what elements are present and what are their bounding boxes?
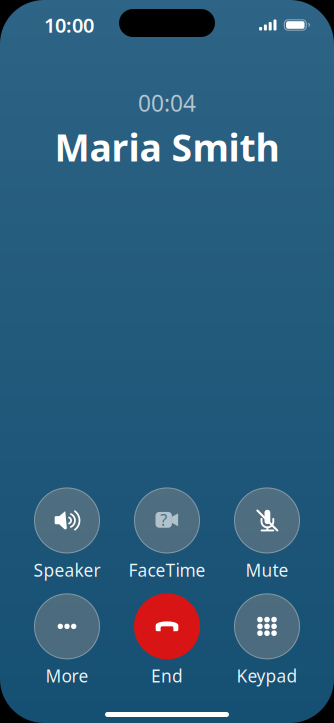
button[interactable]: More [17, 593, 117, 687]
button[interactable]: Speaker [17, 487, 117, 581]
staticText: Maria Smith [54, 122, 279, 172]
staticText: Keypad [236, 664, 297, 687]
button[interactable]: Mute [217, 487, 317, 581]
staticText: Speaker [33, 558, 100, 581]
button[interactable]: End [117, 593, 217, 687]
staticText: 10:00 [44, 12, 94, 38]
button[interactable]: ? [117, 487, 217, 581]
staticText: Mute [245, 558, 288, 581]
button[interactable]: Keypad [217, 593, 317, 687]
staticText: ? [160, 509, 167, 530]
staticText: More [45, 664, 88, 687]
staticText: FaceTime [128, 558, 205, 581]
staticText: End [151, 664, 183, 687]
staticText: 00:04 [138, 88, 196, 118]
